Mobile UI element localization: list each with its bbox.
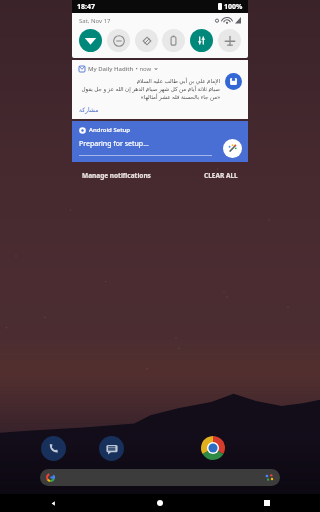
staticText: CLEAR ALL: [204, 171, 238, 180]
button[interactable]: Do not disturb: [107, 29, 130, 52]
button[interactable]: Search: [40, 469, 280, 486]
staticText: Preparing for setup…: [79, 139, 149, 149]
button[interactable]: My Daily Hadith: [72, 60, 248, 119]
button[interactable]: Airplane mode: [218, 29, 241, 52]
button[interactable]: Continue setup: [223, 139, 242, 158]
button[interactable]: Auto-rotate: [135, 29, 158, 52]
button[interactable]: Chrome: [200, 435, 226, 461]
button[interactable]: CLEAR ALL: [202, 169, 240, 182]
other: My Daily Hadith: [225, 73, 242, 90]
button[interactable]: Mobile data: [190, 29, 213, 52]
staticText: Android Setup: [89, 126, 130, 134]
button[interactable]: Android Setup: [72, 121, 248, 162]
button[interactable]: Home: [106, 494, 213, 512]
button[interactable]: Wi-Fi: [79, 29, 102, 52]
staticText: • now: [134, 65, 152, 73]
staticText: My Daily Hadith: [88, 65, 134, 73]
staticText: مشاركة: [79, 106, 99, 113]
button[interactable]: Manage notifications: [80, 169, 153, 182]
button[interactable]: Messages: [99, 436, 124, 461]
staticText: صيام ثلاثة أيام من كل شهر صيام الدهر إن …: [79, 85, 220, 93]
button[interactable]: Phone: [41, 436, 66, 461]
staticText: «من جاء بالحسنة فله عشر أمثالها»: [79, 93, 220, 101]
staticText: 18:47: [77, 2, 95, 12]
staticText: Sat, Nov 17: [79, 17, 111, 25]
staticText: الإمام علي بن أبي طالب عليه السلام: [79, 77, 220, 85]
button[interactable]: Back: [0, 494, 106, 512]
staticText: 100%: [224, 2, 243, 12]
button[interactable]: Battery saver: [162, 29, 185, 52]
button[interactable]: Recents: [213, 494, 320, 512]
button[interactable]: مشاركة: [79, 106, 99, 113]
staticText: Manage notifications: [82, 171, 151, 180]
